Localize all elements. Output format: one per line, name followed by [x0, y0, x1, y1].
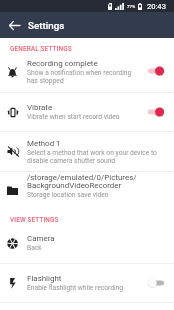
- staticText: Method 1: [27, 139, 61, 148]
- button[interactable]: Toggle off: [145, 275, 167, 291]
- staticText: 20:43: [147, 2, 166, 11]
- staticText: Settings: [28, 20, 65, 31]
- button[interactable]: Vibrate: [0, 93, 174, 131]
- staticText: Storage location save video: [27, 191, 109, 199]
- staticText: Flashlight: [27, 274, 62, 283]
- button[interactable]: Camera: [0, 223, 174, 263]
- button[interactable]: Toggle on: [145, 104, 167, 120]
- button[interactable]: /storage/emulated/0/Pictures/ Background…: [0, 172, 174, 208]
- staticText: /storage/emulated/0/Pictures/ Background…: [27, 173, 137, 190]
- staticText: Select a method that work on your device…: [27, 149, 157, 164]
- staticText: Enable flashlight while recording: [27, 284, 124, 292]
- button[interactable]: Toggle on: [145, 63, 167, 79]
- staticText: Recording complete: [27, 59, 98, 68]
- staticText: Camera: [27, 234, 55, 243]
- button[interactable]: Method 1: [0, 132, 174, 171]
- staticText: Show a notification when recording has s…: [27, 69, 132, 84]
- staticText: VIEW SETTINGS: [10, 216, 59, 224]
- button[interactable]: Back: [0, 12, 28, 38]
- staticText: Vibrate: [27, 103, 53, 112]
- staticText: 77%: [127, 4, 136, 9]
- staticText: GENERAL SETTINGS: [10, 45, 72, 53]
- staticText: Back: [27, 244, 42, 252]
- staticText: Vibrate when start record video: [27, 113, 120, 121]
- button[interactable]: Recording complete: [0, 50, 174, 92]
- button[interactable]: Flashlight: [0, 264, 174, 302]
